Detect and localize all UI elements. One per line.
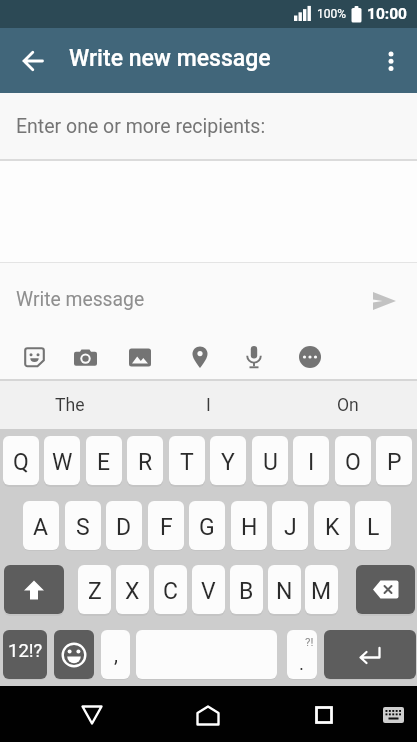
staticText: 12!? [8, 640, 43, 662]
staticText: A [33, 514, 49, 541]
button[interactable]: O [335, 436, 371, 485]
staticText: I [206, 395, 211, 416]
button[interactable] [136, 630, 277, 679]
button[interactable] [293, 340, 327, 374]
button[interactable]: Enter one or more recipients: [0, 93, 417, 159]
button[interactable]: Y [210, 436, 246, 485]
staticText: D [116, 514, 132, 541]
staticText: O [345, 449, 361, 476]
staticText: L [367, 514, 380, 541]
staticText: J [284, 514, 297, 541]
staticText: Write new message [69, 45, 271, 72]
button[interactable] [123, 340, 157, 374]
button[interactable]: H [231, 501, 267, 550]
button[interactable]: L [355, 501, 391, 550]
button[interactable]: U [252, 436, 288, 485]
button[interactable]: S [65, 501, 101, 550]
button[interactable] [302, 693, 346, 737]
button[interactable] [237, 340, 271, 374]
staticText: 100% [317, 7, 347, 21]
staticText: , [114, 643, 118, 666]
staticText: E [97, 449, 111, 476]
button[interactable]: P [376, 436, 412, 485]
button[interactable]: A [23, 501, 59, 550]
button[interactable]: V [192, 565, 225, 614]
button[interactable]: N [268, 565, 301, 614]
staticText: W [52, 449, 73, 476]
staticText: B [239, 578, 254, 605]
staticText: U [263, 449, 278, 476]
staticText: V [201, 578, 216, 605]
staticText: N [276, 578, 293, 605]
button[interactable] [70, 693, 114, 737]
button[interactable] [365, 282, 403, 320]
staticText: Y [221, 449, 235, 476]
button[interactable] [287, 630, 317, 679]
button[interactable] [54, 630, 94, 679]
button[interactable]: E [86, 436, 122, 485]
staticText: Z [88, 578, 102, 605]
button[interactable]: Z [78, 565, 111, 614]
button[interactable] [375, 697, 411, 733]
staticText: . [299, 652, 305, 674]
staticText: On [337, 395, 359, 416]
button[interactable] [183, 340, 217, 374]
button[interactable] [186, 693, 230, 737]
button[interactable]: W [44, 436, 80, 485]
staticText: M [311, 578, 332, 605]
button[interactable] [371, 41, 411, 81]
staticText: R [138, 449, 153, 476]
button[interactable] [16, 44, 50, 78]
staticText: P [387, 449, 402, 476]
button[interactable]: On [278, 395, 417, 416]
button[interactable]: 12!? [3, 630, 47, 679]
staticText: T [180, 449, 194, 476]
staticText: I [308, 449, 315, 476]
staticText: K [325, 514, 340, 541]
button[interactable]: D [106, 501, 142, 550]
button[interactable]: J [272, 501, 308, 550]
button[interactable]: R [127, 436, 163, 485]
staticText: ?! [305, 635, 314, 648]
button[interactable]: G [189, 501, 225, 550]
button[interactable]: Q [3, 436, 39, 485]
button[interactable]: K [314, 501, 350, 550]
button[interactable]: M [305, 565, 338, 614]
button[interactable] [324, 630, 416, 679]
button[interactable]: , [101, 630, 130, 679]
button[interactable] [17, 340, 51, 374]
staticText: X [125, 578, 140, 605]
button[interactable]: F [148, 501, 184, 550]
button[interactable]: I [293, 436, 329, 485]
button[interactable] [68, 340, 102, 374]
button[interactable]: C [154, 565, 187, 614]
button[interactable]: I [139, 395, 278, 416]
staticText: S [76, 514, 90, 541]
button[interactable] [4, 565, 64, 614]
staticText: Enter one or more recipients: [16, 115, 266, 138]
staticText: Q [13, 449, 29, 476]
staticText: H [241, 514, 258, 541]
staticText: C [163, 578, 178, 605]
button[interactable]: X [116, 565, 149, 614]
button[interactable]: The [0, 395, 139, 416]
button[interactable] [356, 565, 415, 614]
button[interactable]: B [230, 565, 263, 614]
staticText: Write message [16, 288, 145, 311]
staticText: G [199, 514, 215, 541]
staticText: 10:00 [367, 5, 407, 23]
staticText: The [55, 395, 85, 416]
button[interactable]: T [169, 436, 205, 485]
staticText: F [160, 514, 173, 541]
